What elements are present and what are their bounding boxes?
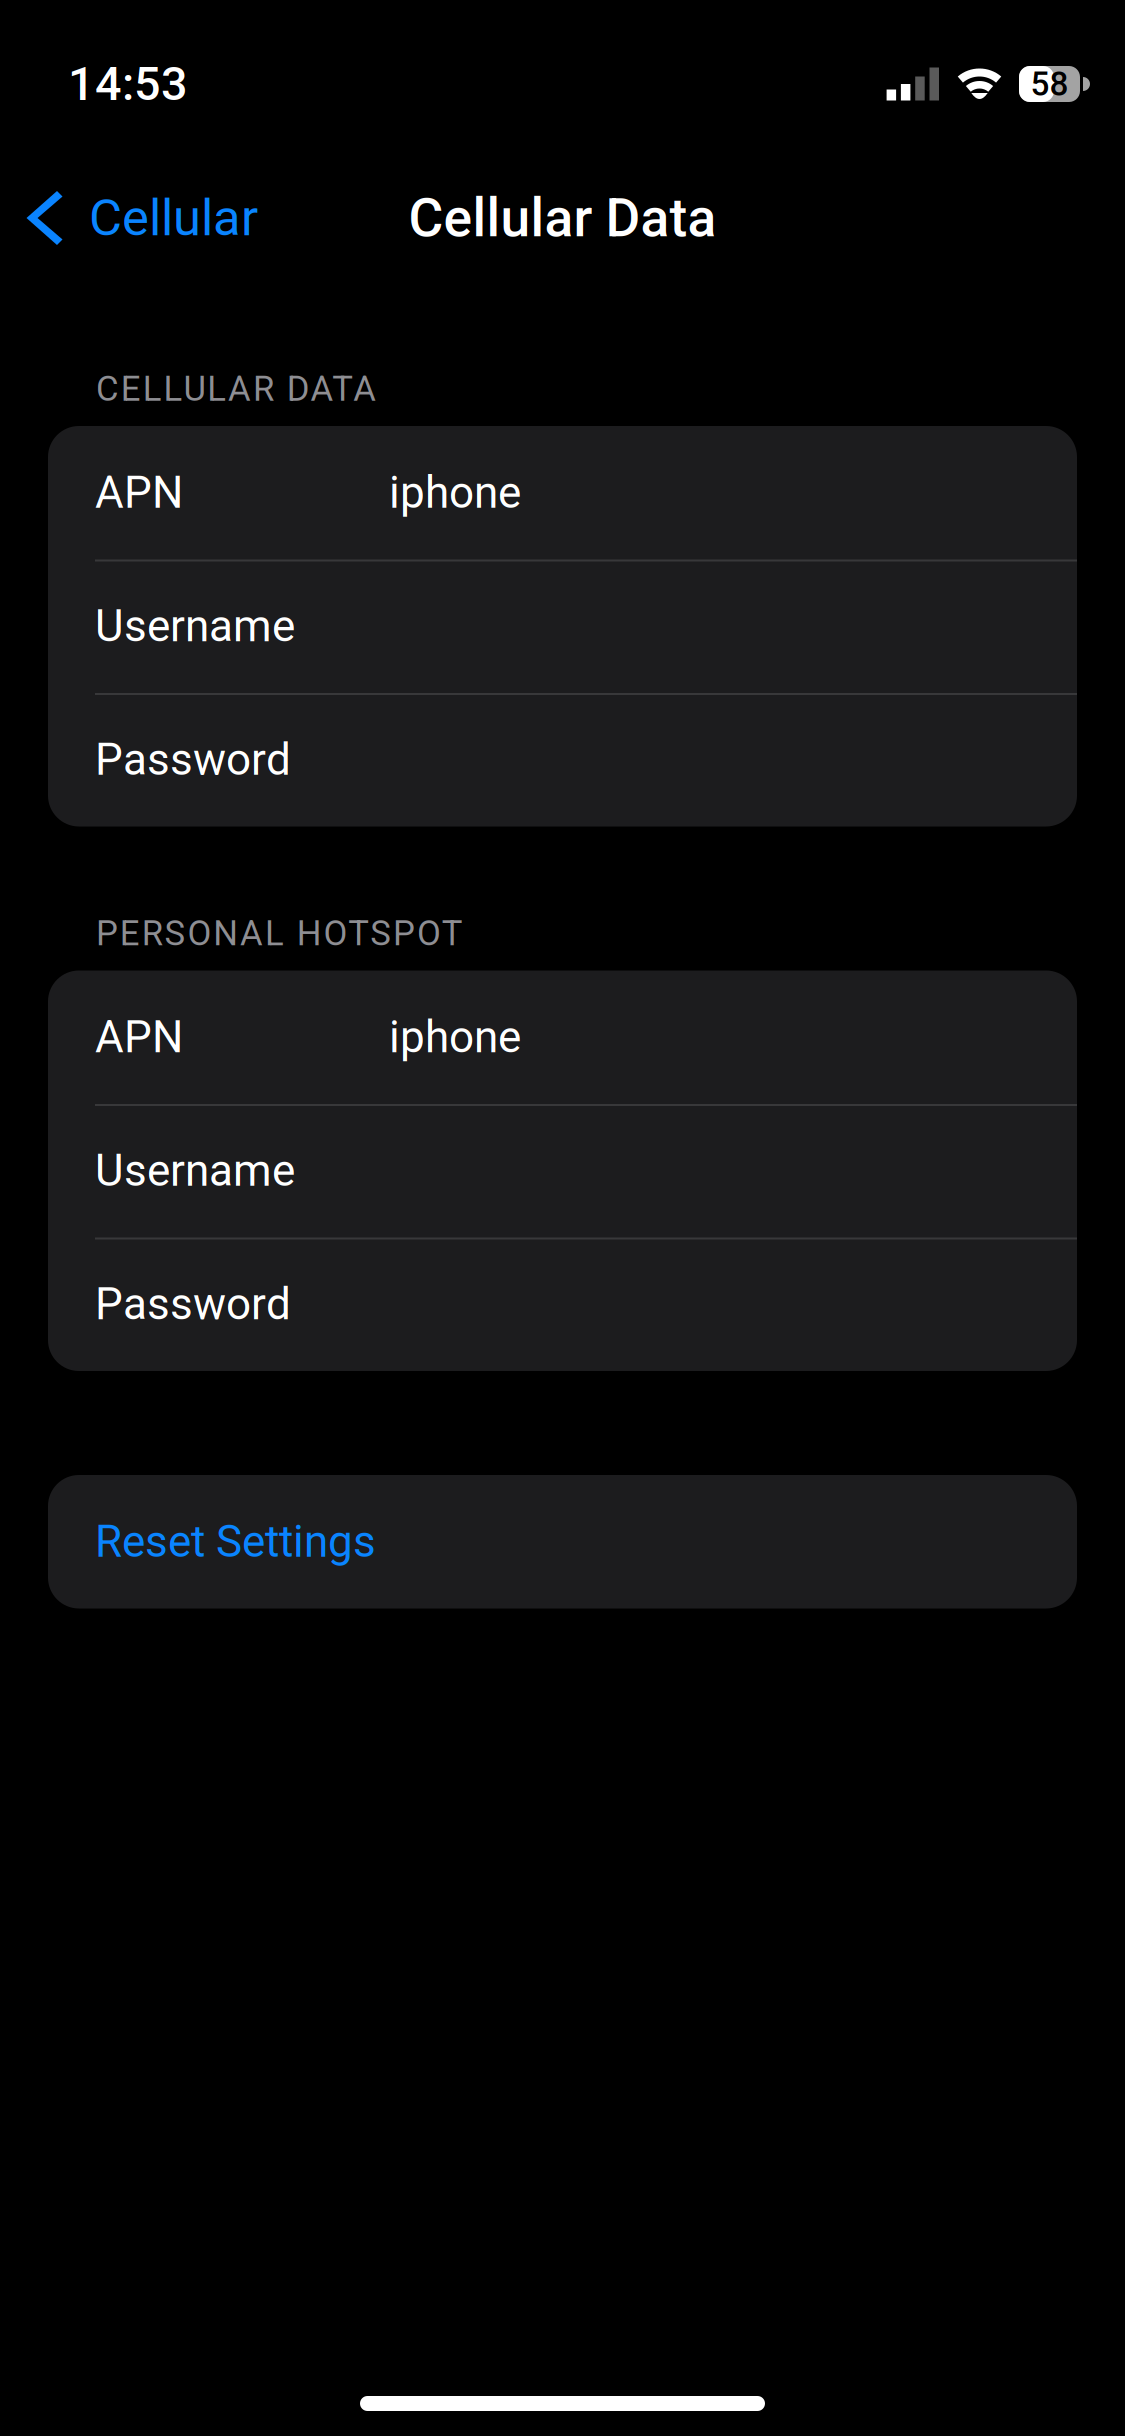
staticText: 58 — [1030, 64, 1068, 104]
staticText: Password — [95, 1278, 291, 1330]
button[interactable]: Username — [48, 559, 1077, 693]
staticText: 14:53 — [68, 57, 188, 111]
button[interactable]: APN — [48, 970, 1077, 1104]
staticText: Password — [95, 734, 291, 786]
staticText: Username — [95, 1145, 295, 1197]
staticText: APN — [95, 1011, 183, 1063]
button[interactable]: Reset Settings — [0, 1475, 1125, 1608]
staticText: Reset Settings — [95, 1516, 376, 1568]
button[interactable]: Cellular — [0, 170, 278, 266]
staticText: PERSONAL HOTSPOT — [96, 913, 463, 954]
button[interactable]: APN — [48, 426, 1077, 559]
staticText: Username — [95, 600, 295, 652]
staticText: Cellular Data — [408, 187, 716, 249]
staticText: iphone — [389, 467, 521, 519]
staticText: Cellular — [89, 188, 258, 248]
button[interactable]: Password — [48, 1237, 1077, 1371]
staticText: CELLULAR DATA — [96, 369, 376, 409]
staticText: iphone — [389, 1011, 521, 1063]
staticText: APN — [95, 467, 183, 519]
button[interactable]: Username — [48, 1104, 1077, 1237]
button[interactable]: Password — [48, 693, 1077, 826]
